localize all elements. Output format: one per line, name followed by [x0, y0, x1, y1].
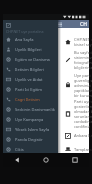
staticText: fotografiniz [74, 60, 92, 65]
staticText: adresinizi d [74, 83, 92, 88]
button[interactable]: Iletisim Bilgileri [3, 64, 58, 74]
staticText: Uyelik ve Aidat [15, 77, 43, 82]
button[interactable]: Uye Kampanya [3, 114, 58, 124]
button[interactable]: Home [31, 153, 60, 167]
staticText: Ana Sayfa [15, 37, 34, 42]
button[interactable]: Ana Sayfa [3, 34, 58, 44]
staticText: Parti uyes [74, 99, 92, 104]
staticText: kisisel say [74, 42, 92, 47]
button[interactable]: Egitim ve Danisma [3, 54, 58, 64]
staticText: Bu sayfad [74, 50, 92, 55]
staticText: Ankara ka [74, 133, 92, 138]
staticText: CHP.NET uye portalina hosgeldiniz [6, 29, 61, 34]
button[interactable]: Parti uyes [58, 99, 92, 128]
staticText: sisteminize [74, 55, 92, 60]
staticText: Uye Kampanya [15, 117, 44, 122]
staticText: Cikis [15, 147, 24, 152]
staticText: Parola Degistir [15, 137, 43, 142]
button[interactable]: Back [3, 153, 31, 167]
button[interactable]: Yiksek Islem Sayfa [3, 124, 58, 134]
staticText: CHP.NET [80, 21, 89, 28]
staticText: yaptiklariniz [74, 88, 92, 93]
staticText: Parti Ici Egitim [15, 87, 43, 92]
staticText: guvenlig se [74, 78, 92, 83]
button[interactable]: Uyelik ve Aidat [3, 74, 58, 84]
staticText: bir kurum [74, 93, 92, 98]
staticText: Uyelik Bilgileri [15, 47, 42, 52]
button[interactable]: Uyelik Bilgileri [3, 44, 58, 54]
button[interactable]: Cikis [3, 144, 58, 154]
button[interactable]: Recent apps [60, 153, 89, 167]
button[interactable]: CHP.NET u [58, 35, 92, 48]
staticText: gosterilen b [74, 104, 92, 109]
staticText: cardadiniz [74, 119, 92, 124]
button[interactable]: Ankara ka [58, 128, 92, 143]
staticText: cardifiniz [74, 124, 91, 128]
staticText: Seckinin Danismanlik [15, 107, 55, 112]
button[interactable]: Tamplama [58, 143, 92, 155]
button[interactable]: Cagri Iletisim [3, 94, 58, 104]
staticText: CHP.NET u [74, 37, 92, 42]
button[interactable]: Parola Degistir [3, 134, 58, 144]
staticText: Uye parti [74, 73, 92, 78]
button[interactable]: Parti Ici Egitim [3, 84, 58, 94]
button[interactable]: Bu sayfad [58, 48, 92, 71]
staticText: Iletisim Bilgileri [15, 67, 44, 72]
staticText: Yiksek Islem Sayfa [15, 127, 50, 132]
staticText: Cagri Iletisim [15, 97, 40, 102]
staticText: sorunlarini [74, 114, 92, 119]
staticText: Egitim ve Danisma [15, 57, 50, 62]
staticText: bilgileriniz [74, 65, 92, 70]
button[interactable]: Seckinin Danismanlik [3, 104, 58, 114]
staticText: olmadan bir [74, 109, 92, 114]
button[interactable]: Open navigation menu [57, 20, 63, 28]
button[interactable]: Uye parti [58, 71, 92, 99]
staticText: Tamplama [74, 147, 92, 152]
